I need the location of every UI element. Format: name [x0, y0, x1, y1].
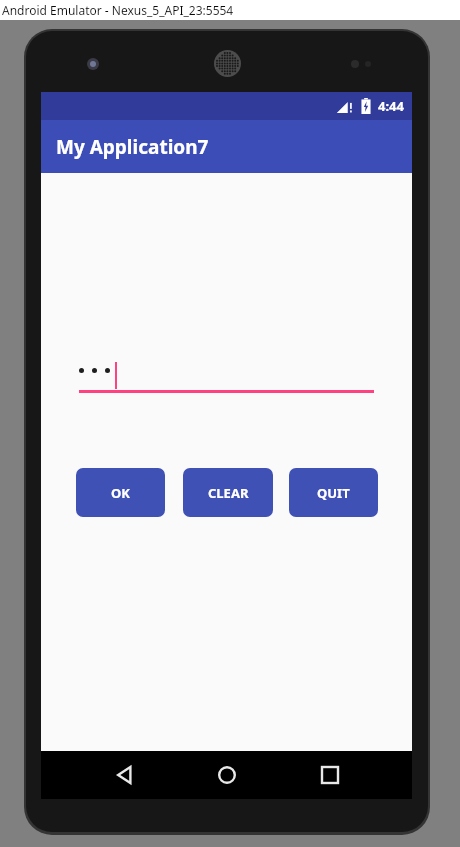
staticText: My Application7 — [56, 134, 209, 160]
button[interactable]: OK — [76, 468, 165, 517]
button[interactable]: Recents — [298, 751, 362, 799]
button[interactable] — [79, 360, 374, 398]
button[interactable]: QUIT — [289, 468, 378, 517]
staticText: QUIT — [317, 484, 350, 502]
button[interactable]: CLEAR — [183, 468, 273, 517]
staticText: 4:44 — [378, 97, 404, 115]
button[interactable]: Home — [195, 751, 259, 799]
button[interactable]: Back — [93, 751, 157, 799]
staticText: CLEAR — [208, 484, 249, 502]
staticText: Android Emulator - Nexus_5_API_23:5554 — [2, 2, 234, 18]
staticText: OK — [111, 484, 130, 502]
